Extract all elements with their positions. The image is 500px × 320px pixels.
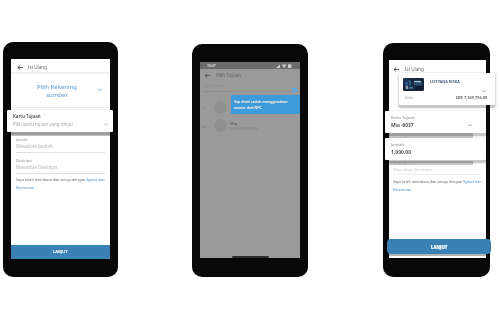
staticText: LANJUT — [431, 244, 448, 250]
staticText: Cari Tujuan — [204, 83, 224, 88]
staticText: Isi Ulang — [405, 66, 424, 72]
staticText: LANJUT — [53, 249, 68, 255]
staticText: Masukkan Deskripsi — [16, 164, 58, 170]
staticText: Jumlah — [16, 137, 28, 142]
button[interactable]: Back — [203, 71, 211, 79]
staticText: M — [202, 124, 206, 129]
button[interactable]: LANJUT — [11, 245, 110, 259]
staticText: Saldo — [405, 95, 414, 99]
button[interactable] — [200, 116, 300, 134]
button[interactable]: Kartu Tujuan — [7, 110, 113, 132]
staticText: Mia -6037 — [391, 122, 414, 129]
staticText: Jumlah — [391, 142, 405, 147]
staticText: LISTYANA RISKA — [430, 79, 460, 84]
staticText: Masukkan Jumlah — [16, 143, 53, 149]
staticText: Deskripsi — [393, 161, 409, 166]
staticText: Mia — [230, 121, 237, 126]
button[interactable]: LANJUT — [387, 239, 491, 254]
staticText: Pilih kartu tujuan yang dituju — [13, 121, 73, 127]
button[interactable]: Pilih Rekening sumber — [11, 74, 110, 114]
staticText: Saya telah membaca dan setuju dengan Sya… — [393, 179, 484, 192]
staticText: Kartu Tujuan — [13, 113, 41, 119]
staticText: Pilih Rekening sumber — [37, 83, 77, 99]
button[interactable]: Tap disini untuk menggunakan nomor dari … — [231, 95, 300, 114]
button[interactable]: Back — [392, 65, 400, 73]
staticText: Kartu Tujuan — [391, 115, 416, 120]
staticText: Saya telah membaca dan setuju dengan Sya… — [16, 177, 106, 190]
staticText: Deskripsi — [16, 158, 32, 163]
button[interactable] — [200, 98, 300, 116]
staticText: +62 812 3456 7890 — [230, 127, 259, 131]
staticText: 16:27 — [207, 63, 216, 68]
button[interactable]: Kartu Tujuan — [385, 111, 486, 133]
button[interactable]: Back — [16, 63, 24, 71]
staticText: 1,000.00 — [391, 149, 411, 156]
staticText: Isi Ulang — [28, 64, 47, 70]
staticText: Tap disini untuk menggunakan nomor dari … — [234, 99, 288, 110]
staticText: I — [203, 106, 205, 111]
staticText: IDR 7,369,756.00 — [456, 95, 488, 100]
button[interactable]: Jumlah — [385, 138, 486, 160]
button[interactable]: LISTYANA RISKA — [399, 73, 495, 105]
staticText: Pilih Tujuan — [216, 72, 241, 78]
staticText: Masukkan Deskripsi — [393, 167, 433, 173]
